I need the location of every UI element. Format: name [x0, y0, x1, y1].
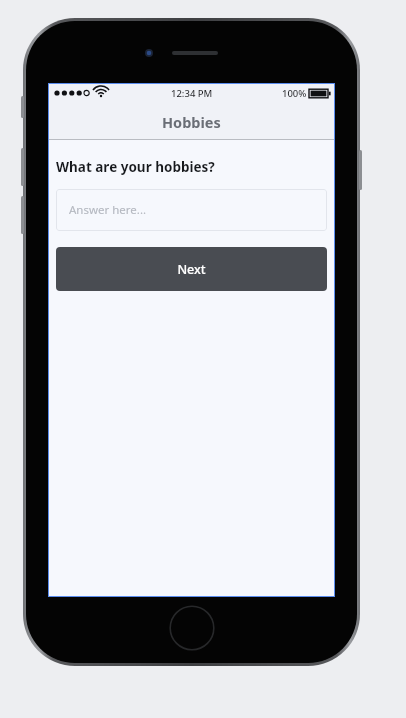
staticText: Answer here... — [69, 202, 147, 218]
staticText: Hobbies — [162, 112, 221, 132]
staticText: What are your hobbies? — [56, 158, 215, 176]
staticText: 12:34 PM — [171, 87, 213, 100]
button[interactable]: Answer here... — [56, 189, 327, 231]
staticText: 100% — [282, 87, 307, 100]
button[interactable]: Next — [56, 247, 327, 291]
staticText: Next — [177, 261, 206, 278]
